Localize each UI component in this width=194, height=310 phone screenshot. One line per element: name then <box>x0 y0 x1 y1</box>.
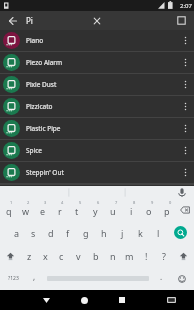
staticText: m <box>125 250 134 262</box>
button[interactable]: Piano <box>0 30 194 52</box>
button[interactable]: More options for Piezo Alarm <box>176 52 194 73</box>
staticText: Piano <box>26 36 176 45</box>
staticText: x <box>43 250 48 262</box>
staticText: 1 <box>10 200 13 205</box>
button[interactable]: 8 <box>122 199 140 221</box>
button[interactable]: More options for Steppin' Out <box>176 162 194 183</box>
staticText: a <box>14 227 20 239</box>
staticText: w <box>22 205 30 217</box>
staticText: v <box>76 250 81 262</box>
staticText: 0 <box>169 200 172 205</box>
button[interactable]: , <box>26 267 43 290</box>
button[interactable]: 1 <box>0 199 17 221</box>
button[interactable]: m <box>121 244 138 267</box>
staticText: n <box>110 250 116 262</box>
button[interactable]: 7 <box>104 199 122 221</box>
button[interactable]: Stop <box>168 11 194 30</box>
button[interactable]: k <box>131 221 149 244</box>
button[interactable]: Backspace <box>176 199 194 221</box>
button[interactable]: Pixie Dust <box>0 74 194 96</box>
staticText: c <box>59 250 64 262</box>
button[interactable]: x <box>37 244 53 267</box>
staticText: d <box>48 227 54 239</box>
button[interactable]: Back <box>35 290 57 310</box>
staticText: 7 <box>115 200 118 205</box>
button[interactable]: c <box>53 244 70 267</box>
button[interactable]: s <box>25 221 42 244</box>
button[interactable]: b <box>87 244 104 267</box>
button[interactable]: Shift <box>0 244 21 267</box>
staticText: . <box>160 271 163 282</box>
staticText: i <box>130 205 133 217</box>
button[interactable]: ? <box>155 244 172 267</box>
button[interactable]: Emoji <box>170 267 194 290</box>
button[interactable]: Recent apps <box>111 290 133 310</box>
staticText: Spice <box>26 146 176 155</box>
staticText: y <box>93 205 98 217</box>
button[interactable]: 0 <box>158 199 176 221</box>
button[interactable]: Clear query <box>82 11 112 30</box>
button[interactable]: More options for Pixie Dust <box>176 74 194 95</box>
staticText: 3 <box>44 200 47 205</box>
staticText: Pixie Dust <box>26 80 176 89</box>
staticText: l <box>157 227 160 239</box>
button[interactable]: ! <box>138 244 155 267</box>
button[interactable]: j <box>113 221 131 244</box>
button[interactable]: l <box>149 221 167 244</box>
button[interactable]: f <box>59 221 77 244</box>
button[interactable]: 5 <box>68 199 86 221</box>
button[interactable]: z <box>21 244 37 267</box>
button[interactable]: Switch keyboard <box>158 290 185 310</box>
button[interactable]: Spice <box>0 140 194 162</box>
staticText: e <box>40 205 46 217</box>
staticText: 2:07 <box>180 2 192 10</box>
button[interactable]: Space <box>43 267 153 290</box>
staticText: j <box>121 227 124 239</box>
button[interactable]: a <box>8 221 25 244</box>
staticText: p <box>164 205 170 217</box>
staticText: , <box>33 271 36 282</box>
button[interactable]: d <box>42 221 59 244</box>
button[interactable]: 6 <box>86 199 104 221</box>
button[interactable]: 2 <box>17 199 34 221</box>
staticText: q <box>6 205 12 217</box>
staticText: b <box>93 250 99 262</box>
button[interactable]: Search <box>167 221 194 244</box>
staticText: f <box>66 227 70 239</box>
button[interactable]: More options for Piano <box>176 30 194 51</box>
button[interactable]: 9 <box>140 199 158 221</box>
button[interactable]: 3 <box>34 199 51 221</box>
button[interactable]: n <box>104 244 121 267</box>
button[interactable]: 4 <box>51 199 68 221</box>
button[interactable]: Home <box>73 290 95 310</box>
button[interactable]: Pizzicato <box>0 96 194 118</box>
staticText: Pizzicato <box>26 102 176 111</box>
button[interactable]: Plastic Pipe <box>0 118 194 140</box>
button[interactable]: Pi <box>26 11 82 30</box>
button[interactable]: More options for Pizzicato <box>176 96 194 117</box>
button[interactable]: Navigate up <box>0 11 26 30</box>
staticText: Pi <box>26 15 33 26</box>
button[interactable]: v <box>70 244 87 267</box>
button[interactable]: Steppin' Out <box>0 162 194 184</box>
button[interactable]: Shift <box>172 244 194 267</box>
staticText: Plastic Pipe <box>26 124 176 133</box>
button[interactable]: ?123 <box>0 267 26 290</box>
staticText: r <box>58 205 62 217</box>
button[interactable]: h <box>95 221 113 244</box>
button[interactable]: g <box>77 221 95 244</box>
staticText: s <box>31 227 36 239</box>
button[interactable]: More options for Plastic Pipe <box>176 118 194 139</box>
staticText: Piezo Alarm <box>26 58 176 67</box>
button[interactable]: More options for Spice <box>176 140 194 161</box>
staticText: 2 <box>27 200 30 205</box>
staticText: ? <box>162 250 166 262</box>
staticText: Steppin' Out <box>26 168 176 177</box>
staticText: 6 <box>97 200 100 205</box>
staticText: 4 <box>61 200 64 205</box>
button[interactable]: Piezo Alarm <box>0 52 194 74</box>
staticText: h <box>101 227 107 239</box>
staticText: z <box>27 250 32 262</box>
button[interactable]: . <box>153 267 170 290</box>
